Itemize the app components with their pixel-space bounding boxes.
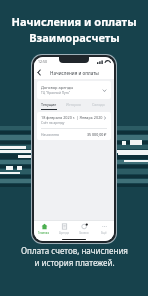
- staticText: Ещё: [101, 231, 107, 235]
- staticText: Заявки: [79, 231, 89, 235]
- staticText: История: [66, 102, 81, 107]
- button[interactable]: Договор аренды: [37, 81, 111, 99]
- button[interactable]: Сальдо: [86, 101, 111, 110]
- button[interactable]: Текущие: [37, 101, 61, 110]
- staticText: Оплата счетов, начисления: [21, 245, 128, 256]
- staticText: 35 000,00 ₽: [87, 132, 107, 137]
- staticText: Договор аренды: [41, 85, 74, 90]
- staticText: Взаиморасчеты: [29, 30, 120, 45]
- button[interactable]: История: [61, 101, 86, 110]
- staticText: Начисления и оплаты: [50, 70, 99, 76]
- staticText: ТЦ "Красный Путь": [41, 91, 70, 95]
- button[interactable]: Заявки: [74, 221, 94, 237]
- button[interactable]: Ещё: [94, 221, 114, 237]
- staticText: Текущие: [41, 102, 57, 107]
- staticText: 18 февраля 2020 г. | Январь 2020: [41, 115, 103, 120]
- button[interactable]: Главная: [34, 221, 54, 237]
- button[interactable]: Назад: [34, 67, 45, 78]
- staticText: Начисления и оплаты: [11, 14, 137, 29]
- staticText: 12:50: [38, 59, 47, 64]
- staticText: Главная: [38, 231, 50, 235]
- staticText: Аренда: [59, 231, 69, 235]
- staticText: Начислено: [41, 132, 87, 137]
- staticText: Счёт на аренду: [41, 121, 65, 125]
- staticText: Сальдо: [92, 102, 105, 107]
- button[interactable]: 18 февраля 2020 г. | Январь 2020: [37, 112, 111, 140]
- button[interactable]: Аренда: [54, 221, 74, 237]
- staticText: и история платежей.: [34, 257, 115, 268]
